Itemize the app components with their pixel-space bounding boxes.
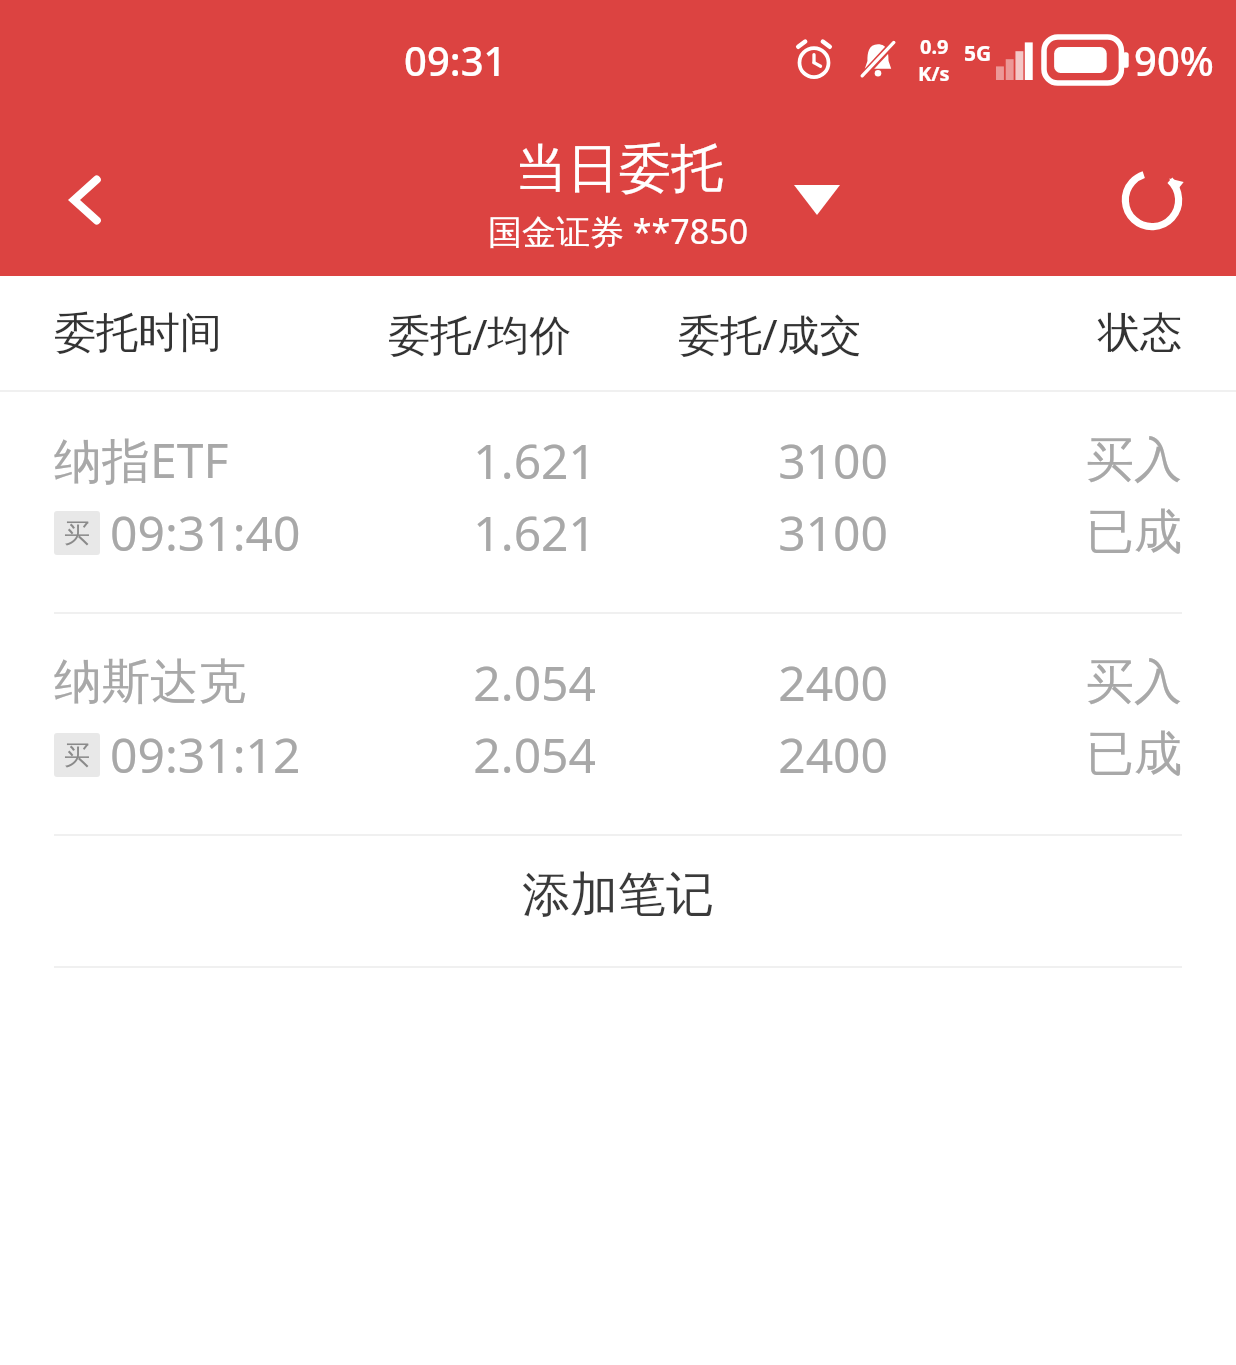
staticText: 3100 (594, 428, 888, 493)
button[interactable]: Select account (772, 160, 862, 240)
staticText: 0.9 (920, 33, 949, 60)
staticText: 买 (64, 517, 90, 550)
staticText: 2.054 (300, 650, 596, 715)
staticText: 当日委托 (515, 136, 723, 202)
button[interactable]: Refresh (1090, 138, 1214, 262)
staticText: 纳斯达克 (54, 652, 246, 712)
staticText: 2400 (594, 650, 888, 715)
staticText: 5G (964, 39, 992, 68)
staticText: 添加笔记 (522, 865, 714, 925)
staticText: 国金证券 **7850 (488, 208, 749, 254)
staticText: 状态 (1098, 307, 1182, 360)
staticText: 09:31 (404, 33, 507, 87)
staticText: 已成 (1086, 724, 1182, 784)
staticText: 09:31:40 (110, 500, 301, 565)
staticText: 09:31:12 (110, 722, 301, 787)
button[interactable]: 纳指ETF (0, 392, 1236, 612)
staticText: 2400 (594, 722, 888, 787)
staticText: 买 (64, 739, 90, 772)
button[interactable]: Back (26, 140, 146, 260)
staticText: 1.621 (300, 500, 596, 565)
staticText: K/s (918, 60, 950, 87)
button[interactable]: 添加笔记 (0, 836, 1236, 966)
staticText: 已成 (1086, 502, 1182, 562)
button[interactable]: 纳斯达克 (0, 614, 1236, 834)
staticText: 2.054 (300, 722, 596, 787)
staticText: 委托/均价 (388, 305, 572, 362)
staticText: 1.621 (300, 428, 596, 493)
staticText: 纳指ETF (54, 427, 229, 493)
staticText: 委托/成交 (678, 305, 862, 362)
staticText: 3100 (594, 500, 888, 565)
staticText: 买入 (1086, 652, 1182, 712)
staticText: 买入 (1086, 430, 1182, 490)
staticText: 90% (1134, 33, 1214, 87)
staticText: 委托时间 (54, 307, 222, 360)
